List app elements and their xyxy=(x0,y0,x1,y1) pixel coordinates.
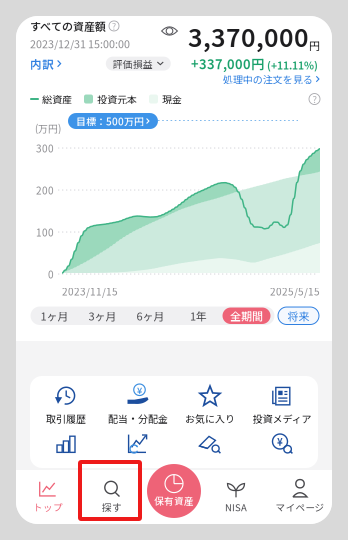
staticText: 1年 xyxy=(190,308,207,324)
staticText: 2023/11/15 xyxy=(62,284,118,298)
staticText: 探す xyxy=(102,500,122,514)
button[interactable]: 1ヶ月 xyxy=(30,306,78,325)
button[interactable]: 積立設定 xyxy=(102,430,174,458)
button[interactable]: ¥ xyxy=(102,384,174,426)
staticText: 保有資産 xyxy=(154,494,194,507)
staticText: 総資産 xyxy=(42,92,72,106)
staticText: (万円) xyxy=(35,121,61,135)
staticText: ? xyxy=(112,20,116,32)
staticText: ¥ xyxy=(137,383,142,396)
staticText: 処理中の注文を見る xyxy=(223,72,313,86)
staticText: ¥ xyxy=(277,434,283,449)
button[interactable]: 投資メディア xyxy=(246,384,318,426)
staticText: お気に入り xyxy=(185,411,235,426)
button[interactable]: 価格を調べる xyxy=(246,430,318,458)
button[interactable]: 保有資産 xyxy=(147,464,201,518)
button[interactable]: 探す xyxy=(80,475,144,519)
staticText: 目標：500万円 xyxy=(76,114,144,128)
staticText: 3,370,000 xyxy=(188,18,309,54)
button[interactable]: 処理中の注文を見る xyxy=(223,72,320,86)
staticText: 現金 xyxy=(162,92,182,106)
staticText: 内訳 xyxy=(30,55,54,72)
button[interactable]: NISA xyxy=(204,475,268,519)
staticText: 円 xyxy=(309,37,320,53)
staticText: 将来 xyxy=(287,308,309,324)
staticText: 100 xyxy=(36,225,54,239)
staticText: マイページ xyxy=(275,500,324,514)
staticText: 0 xyxy=(48,267,54,281)
staticText: 全期間 xyxy=(230,308,263,324)
staticText: 取引履歴 xyxy=(46,411,86,426)
button[interactable]: 取引履歴 xyxy=(30,384,102,426)
button[interactable]: 銘柄を探す xyxy=(174,430,246,458)
button[interactable]: 全期間 xyxy=(222,307,270,324)
staticText: 投資メディア xyxy=(252,411,311,426)
staticText: 配当・分配金 xyxy=(108,411,168,426)
button[interactable]: 資産額を隠す xyxy=(161,25,178,37)
button[interactable]: マイページ xyxy=(268,475,332,519)
button[interactable]: お気に入り xyxy=(174,384,246,426)
staticText: トップ xyxy=(33,500,63,514)
button[interactable]: 6ヶ月 xyxy=(126,306,174,325)
staticText: 200 xyxy=(36,183,54,197)
button[interactable]: 内訳 xyxy=(30,56,62,72)
staticText: 投資元本 xyxy=(97,92,137,106)
staticText: 3ヶ月 xyxy=(88,308,116,324)
staticText: 300 xyxy=(36,141,54,155)
staticText: NISA xyxy=(225,500,247,514)
button[interactable]: 評価損益 xyxy=(106,57,171,71)
staticText: 2025/5/15 xyxy=(270,284,320,298)
button[interactable]: 資産推移 xyxy=(30,430,102,458)
button[interactable]: 目標：500万円 xyxy=(68,113,158,129)
staticText: すべての資産額 xyxy=(30,18,106,34)
staticText: 評価損益 xyxy=(113,56,153,71)
staticText: +337,000円 xyxy=(191,54,264,73)
button[interactable]: トップ xyxy=(16,475,80,519)
button[interactable]: 1年 xyxy=(174,306,222,325)
button[interactable]: 将来 xyxy=(278,307,319,324)
staticText: (+11.11%) xyxy=(267,57,318,72)
staticText: 1ヶ月 xyxy=(40,308,68,324)
staticText: 2023/12/31 15:00:00 xyxy=(30,36,130,51)
staticText: 6ヶ月 xyxy=(136,308,164,324)
button[interactable]: 3ヶ月 xyxy=(78,306,126,325)
staticText: ? xyxy=(312,92,316,106)
button[interactable]: グラフの説明 xyxy=(309,93,320,104)
